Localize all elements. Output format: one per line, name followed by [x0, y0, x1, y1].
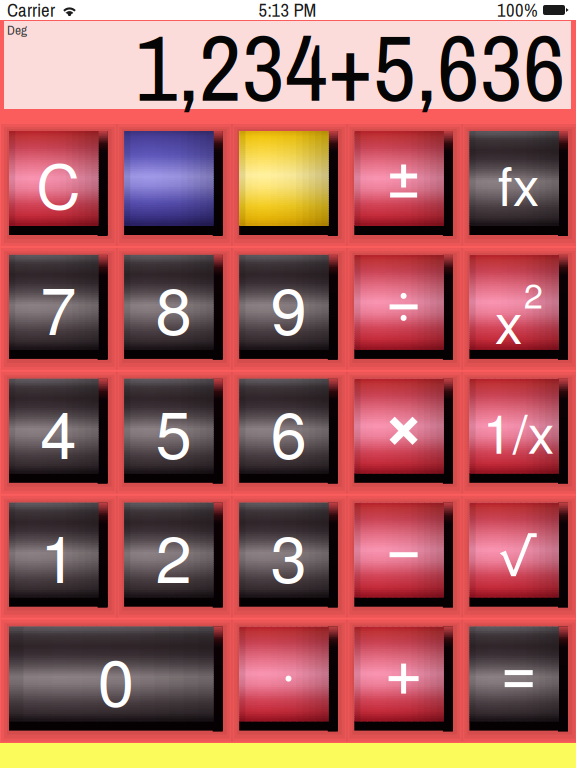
staticText: 7: [40, 260, 76, 354]
staticText: 3: [270, 508, 306, 601]
button[interactable]: fx: [469, 131, 568, 235]
staticText: 0: [98, 632, 134, 725]
staticText: 4: [40, 384, 76, 478]
button[interactable]: 9: [239, 255, 338, 359]
button[interactable]: 7: [9, 255, 108, 359]
button[interactable]: 6: [239, 379, 338, 483]
button[interactable]: 8: [124, 255, 223, 359]
button[interactable]: 3: [239, 503, 338, 607]
staticText: 1,234+5,636: [135, 4, 566, 130]
staticText: x: [495, 280, 523, 360]
button[interactable]: Square root: [469, 503, 568, 607]
staticText: 8: [155, 260, 191, 354]
staticText: 5:13 PM: [258, 0, 316, 22]
staticText: 6: [270, 384, 306, 478]
staticText: 100%: [497, 0, 538, 22]
button[interactable]: 5: [124, 379, 223, 483]
button[interactable]: Decimal point: [239, 627, 338, 731]
button[interactable]: 1: [9, 503, 108, 607]
staticText: fx: [498, 145, 540, 221]
button[interactable]: Equals: [469, 627, 568, 731]
button[interactable]: 0: [9, 627, 223, 731]
staticText: 1: [40, 508, 76, 601]
button[interactable]: 4: [9, 379, 108, 483]
staticText: 1/x: [483, 393, 555, 469]
button[interactable]: Plus or minus: [354, 131, 453, 235]
staticText: 5: [155, 384, 191, 478]
button[interactable]: Multiply: [354, 379, 453, 483]
staticText: 9: [270, 260, 306, 354]
button[interactable]: x to the 2: [469, 255, 568, 359]
staticText: C: [36, 139, 80, 227]
button[interactable]: 1/x: [469, 379, 568, 483]
button[interactable]: Tape: [239, 131, 338, 235]
button[interactable]: Plus: [354, 627, 453, 731]
button[interactable]: C: [9, 131, 108, 235]
button[interactable]: Divide: [354, 255, 453, 359]
staticText: Deg: [7, 21, 27, 39]
staticText: 2: [524, 269, 543, 318]
staticText: Carrier: [7, 0, 55, 22]
button[interactable]: Minus: [354, 503, 453, 607]
button[interactable]: Memory: [124, 131, 223, 235]
button[interactable]: 2: [124, 503, 223, 607]
staticText: 2: [155, 508, 191, 601]
